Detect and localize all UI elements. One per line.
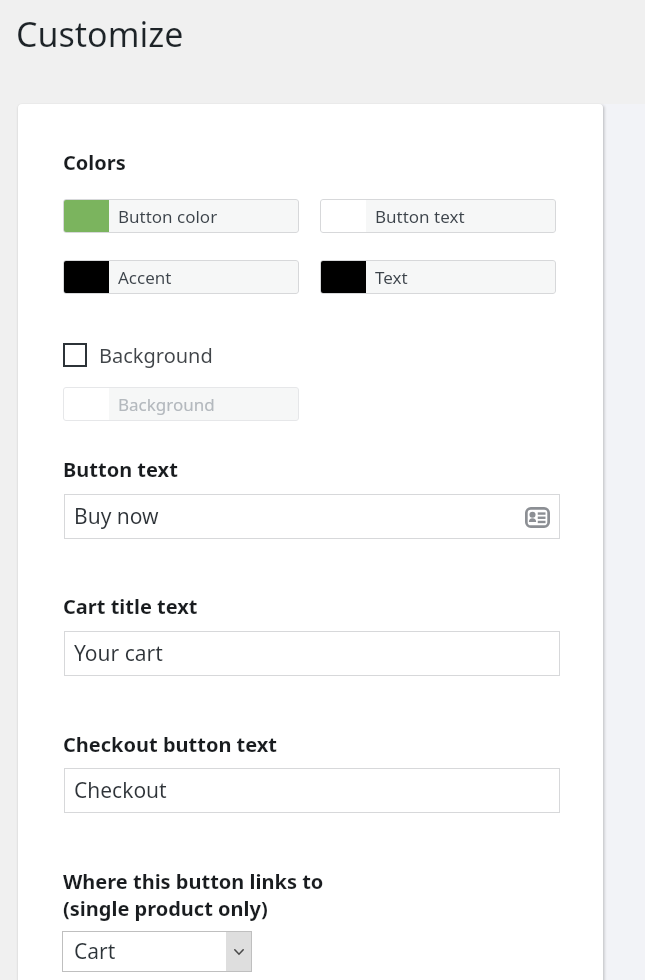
staticText: Customize: [16, 11, 184, 57]
staticText: Button text: [375, 205, 465, 228]
button[interactable]: Buy now: [64, 494, 560, 539]
staticText: Cart: [74, 937, 226, 966]
staticText: Colors: [63, 149, 126, 176]
button[interactable]: Button color: [63, 199, 299, 233]
staticText: Buy now: [74, 502, 159, 531]
staticText: Where this button links to (single produ…: [63, 868, 324, 922]
staticText: Button color: [118, 205, 218, 228]
button[interactable]: Your cart: [64, 631, 560, 676]
button[interactable]: Text: [320, 260, 556, 294]
staticText: Your cart: [74, 639, 163, 668]
button[interactable]: Accent: [63, 260, 299, 294]
button[interactable]: Checkout: [64, 768, 560, 813]
staticText: Checkout: [74, 776, 167, 805]
button[interactable]: Button text: [320, 199, 556, 233]
button[interactable]: Insert personalization tag: [522, 502, 552, 532]
staticText: Background: [99, 342, 213, 369]
staticText: Accent: [118, 266, 172, 289]
staticText: Button text: [63, 456, 178, 483]
staticText: Text: [375, 266, 408, 289]
button[interactable]: Background: [63, 341, 213, 369]
staticText: Checkout button text: [63, 731, 278, 758]
button[interactable]: Background: [63, 387, 299, 421]
staticText: Cart title text: [63, 593, 198, 620]
button[interactable]: Cart: [62, 931, 252, 972]
other: Open dropdown: [226, 932, 251, 971]
staticText: Background: [118, 393, 215, 416]
